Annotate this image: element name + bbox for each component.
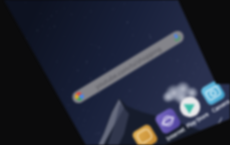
button[interactable]: Home screen bbox=[0, 0, 230, 145]
